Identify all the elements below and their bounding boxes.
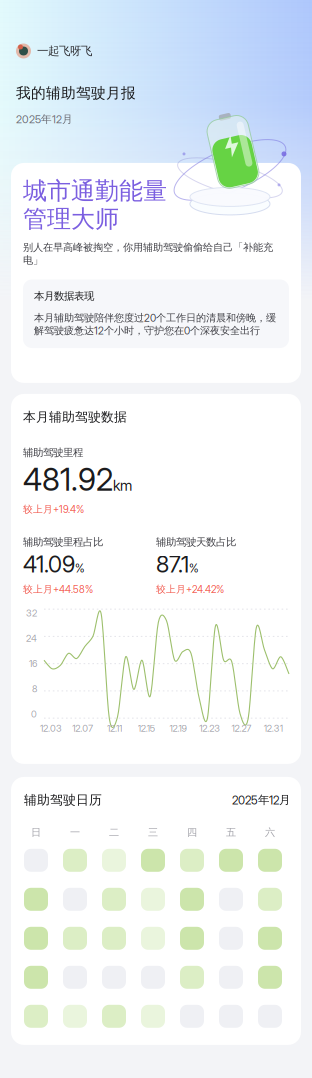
staticText: 481.92	[23, 461, 113, 498]
button[interactable]: Day	[141, 888, 165, 911]
button[interactable]: Day	[24, 966, 48, 989]
staticText: 辅助驾驶天数占比	[156, 535, 236, 549]
button[interactable]: Day	[219, 888, 243, 911]
staticText: 8	[32, 683, 37, 695]
staticText: 三	[148, 826, 158, 839]
button[interactable]: Day	[63, 849, 87, 872]
button[interactable]: Day	[102, 849, 126, 872]
button[interactable]: Day	[180, 1005, 204, 1028]
staticText: 2025年12月	[232, 793, 290, 807]
staticText: 87.1	[156, 551, 189, 578]
button[interactable]: Day	[141, 966, 165, 989]
staticText: 12.23	[199, 723, 220, 734]
staticText: 辅助驾驶日历	[24, 792, 102, 808]
staticText: 我的辅助驾驶月报	[16, 84, 136, 102]
button[interactable]: Day	[219, 966, 243, 989]
button[interactable]: Day	[102, 966, 126, 989]
button[interactable]: Day	[24, 888, 48, 911]
button[interactable]: Day	[141, 927, 165, 950]
staticText: 41.09	[23, 551, 75, 578]
staticText: 12.11	[107, 723, 122, 734]
button[interactable]: Day	[258, 966, 282, 989]
staticText: 12.31	[264, 723, 283, 734]
button[interactable]: Day	[63, 966, 87, 989]
staticText: 辅助驾驶里程占比	[23, 535, 103, 549]
button[interactable]: Day	[258, 1005, 282, 1028]
staticText: 日	[31, 826, 41, 839]
button[interactable]: Day	[102, 888, 126, 911]
button[interactable]: Day	[24, 1005, 48, 1028]
staticText: 32	[26, 607, 37, 619]
button[interactable]: Day	[219, 927, 243, 950]
button[interactable]: Day	[219, 849, 243, 872]
staticText: 12.07	[72, 723, 93, 734]
staticText: 城市通勤能量	[23, 176, 167, 206]
staticText: 较上月+19.4%	[23, 503, 84, 515]
staticText: 12.15	[138, 723, 155, 734]
button[interactable]: Day	[102, 927, 126, 950]
button[interactable]: 一起飞呀飞	[16, 43, 92, 59]
staticText: 别人在早高峰被掏空，你用辅助驾驶偷偷给自己「补能充电」	[23, 241, 273, 266]
staticText: 12.03	[40, 723, 62, 734]
button[interactable]: Day	[63, 1005, 87, 1028]
staticText: 二	[109, 826, 119, 839]
staticText: 管理大师	[23, 204, 119, 234]
button[interactable]: Day	[180, 966, 204, 989]
staticText: 12.27	[231, 723, 251, 734]
button[interactable]: Day	[258, 888, 282, 911]
button[interactable]: Day	[63, 927, 87, 950]
button[interactable]: Day	[180, 849, 204, 872]
staticText: 本月辅助驾驶数据	[23, 409, 127, 425]
button[interactable]: Day	[258, 927, 282, 950]
staticText: 12.19	[169, 723, 186, 734]
staticText: 本月数据表现	[34, 289, 94, 302]
staticText: 本月辅助驾驶陪伴您度过20个工作日的清晨和傍晚，缓解驾驶疲惫达12个小时，守护您…	[34, 311, 276, 337]
button[interactable]: Day	[102, 1005, 126, 1028]
staticText: 五	[226, 826, 236, 839]
staticText: 16	[29, 658, 37, 669]
button[interactable]: Day	[141, 1005, 165, 1028]
button[interactable]: Day	[24, 849, 48, 872]
staticText: 一	[70, 826, 80, 839]
staticText: %	[189, 562, 199, 575]
staticText: 2025年12月	[16, 112, 73, 126]
staticText: 较上月+24.42%	[156, 583, 224, 595]
staticText: 六	[265, 826, 275, 839]
staticText: km	[113, 477, 132, 494]
staticText: 辅助驾驶里程	[23, 446, 83, 459]
staticText: %	[75, 562, 85, 575]
staticText: 0	[31, 708, 37, 720]
button[interactable]: Day	[141, 849, 165, 872]
staticText: 一起飞呀飞	[37, 44, 92, 58]
button[interactable]: Day	[258, 849, 282, 872]
staticText: 较上月+44.58%	[23, 583, 93, 595]
button[interactable]: Day	[180, 888, 204, 911]
button[interactable]: Day	[219, 1005, 243, 1028]
button[interactable]: Day	[180, 927, 204, 950]
button[interactable]: Day	[24, 927, 48, 950]
button[interactable]: Day	[63, 888, 87, 911]
staticText: 四	[187, 826, 197, 839]
staticText: 24	[26, 633, 37, 644]
